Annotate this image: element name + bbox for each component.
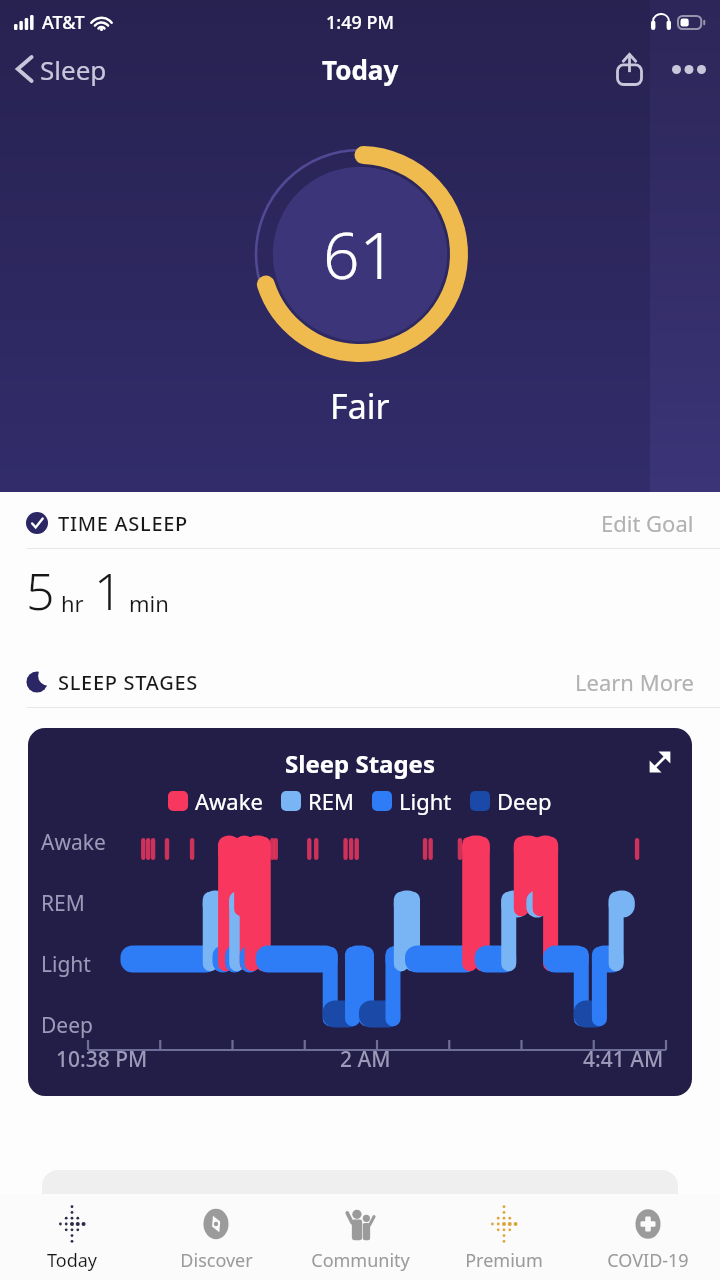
button[interactable]: Sleep bbox=[0, 46, 121, 92]
staticText: COVID-19 bbox=[607, 1248, 689, 1273]
staticText: REM bbox=[308, 786, 354, 816]
staticText: Light bbox=[41, 950, 91, 979]
button[interactable]: COVID-19 bbox=[576, 1194, 720, 1280]
staticText: Learn More bbox=[575, 667, 694, 697]
staticText: Sleep Stages bbox=[285, 747, 435, 780]
staticText: TIME ASLEEP bbox=[58, 510, 601, 537]
staticText: Awake bbox=[195, 786, 263, 816]
staticText: 61 bbox=[323, 211, 397, 298]
button[interactable]: Community bbox=[288, 1194, 432, 1280]
staticText: 1 bbox=[94, 557, 123, 625]
staticText: Awake bbox=[41, 828, 106, 857]
staticText: min bbox=[129, 588, 169, 618]
staticText: SLEEP STAGES bbox=[58, 669, 575, 696]
button[interactable]: Share bbox=[600, 46, 658, 92]
button[interactable]: More options bbox=[658, 46, 720, 92]
staticText: REM bbox=[41, 889, 85, 918]
staticText: 10:38 PM bbox=[56, 1045, 148, 1074]
button[interactable]: SLEEP STAGES bbox=[0, 665, 720, 699]
staticText: 1:49 PM bbox=[326, 10, 394, 35]
staticText: Deep bbox=[41, 1011, 93, 1040]
staticText: Light bbox=[399, 786, 452, 816]
staticText: AT&T bbox=[42, 10, 85, 35]
button[interactable]: Expand chart bbox=[636, 738, 684, 786]
button[interactable]: TIME ASLEEP bbox=[0, 506, 720, 540]
staticText: Discover bbox=[180, 1248, 253, 1273]
staticText: 5 bbox=[26, 557, 55, 625]
staticText: Today bbox=[322, 52, 399, 87]
staticText: Deep bbox=[497, 786, 552, 816]
staticText: 2 AM bbox=[340, 1045, 391, 1074]
staticText: Community bbox=[311, 1248, 410, 1273]
staticText: Fair bbox=[330, 383, 390, 429]
button[interactable]: Sleep Stages bbox=[28, 728, 692, 1096]
button[interactable]: Discover bbox=[144, 1194, 288, 1280]
staticText: Today bbox=[47, 1248, 97, 1273]
button[interactable]: Premium bbox=[432, 1194, 576, 1280]
staticText: Sleep bbox=[40, 52, 107, 86]
staticText: Premium bbox=[465, 1248, 543, 1273]
button[interactable]: Today bbox=[0, 1194, 144, 1280]
staticText: hr bbox=[61, 588, 84, 618]
staticText: Edit Goal bbox=[601, 508, 694, 538]
staticText: 4:41 AM bbox=[583, 1045, 664, 1074]
